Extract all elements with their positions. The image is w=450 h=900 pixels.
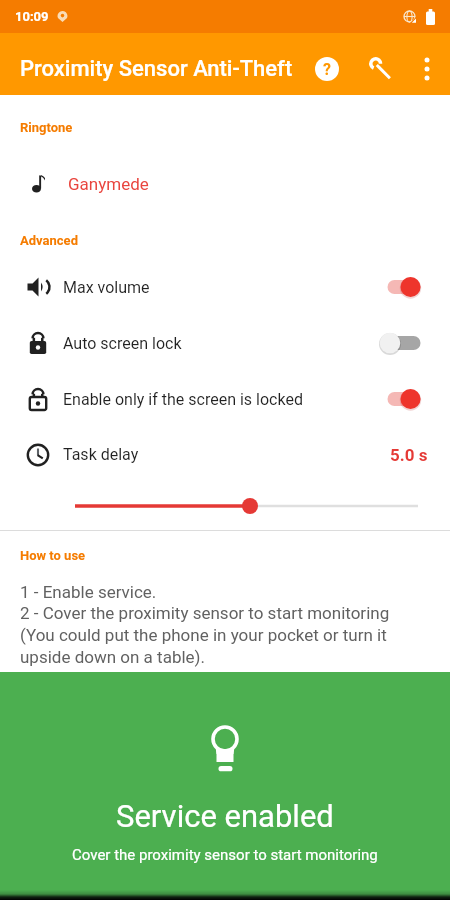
staticText: Max volume [63,278,150,297]
button[interactable]: Service enabled [0,672,450,900]
staticText: Ganymede [68,174,149,194]
button[interactable]: Enable only if the screen is locked [0,371,450,427]
staticText: Ringtone [20,120,73,135]
button[interactable] [386,331,422,355]
staticText: Service enabled [116,798,334,834]
button[interactable] [358,46,404,92]
staticText: 10:09 [15,9,49,24]
staticText: Cover the proximity sensor to start moni… [72,846,378,864]
staticText: Auto screen lock [63,334,182,353]
staticText: Proximity Sensor Anti-Theft [20,56,293,82]
staticText: 5.0 s [390,445,428,465]
button[interactable]: ? [304,46,350,92]
button[interactable]: Max volume [0,259,450,315]
button[interactable]: Task delay [0,427,450,482]
staticText: Advanced [20,233,78,248]
button[interactable] [406,48,448,90]
button[interactable]: Auto screen lock [0,315,450,371]
button[interactable]: Ganymede [0,156,450,212]
staticText: Enable only if the screen is locked [63,390,303,409]
staticText: ? [323,60,331,79]
staticText: 1 - Enable service. 2 - Cover the proxim… [20,582,390,667]
staticText: How to use [20,548,86,563]
button[interactable] [386,275,422,299]
button[interactable] [386,387,422,411]
staticText: Task delay [63,445,139,464]
button[interactable] [0,482,450,530]
